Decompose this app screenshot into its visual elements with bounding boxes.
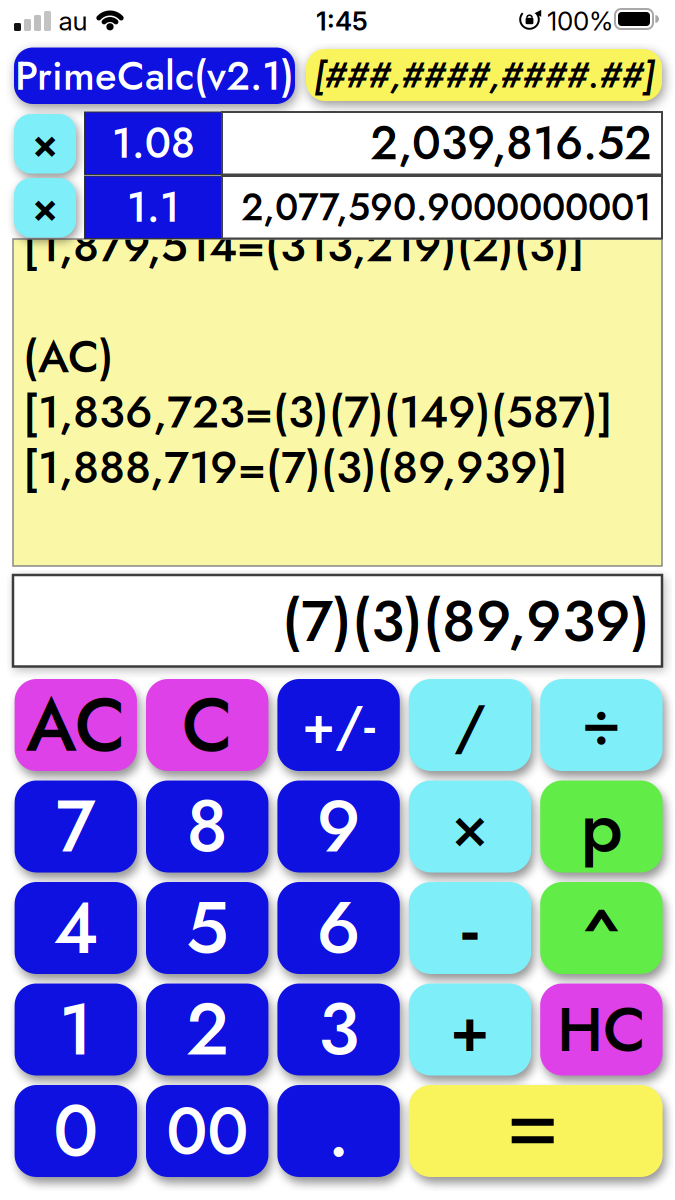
staticText: .: [328, 1079, 350, 1183]
button[interactable]: p: [540, 774, 663, 878]
staticText: /: [454, 683, 486, 767]
staticText: [###,####,####.##]: [313, 49, 654, 101]
staticText: PrimeCalc(v2.1): [15, 47, 294, 105]
button[interactable]: ^: [540, 867, 663, 989]
button[interactable]: ×: [409, 780, 531, 872]
staticText: (7)(3)(89,939): [282, 579, 650, 663]
staticText: 1: [59, 977, 93, 1081]
staticText: 3: [318, 977, 359, 1081]
button[interactable]: 3: [277, 977, 400, 1081]
staticText: 7: [56, 774, 96, 878]
button[interactable]: 1: [15, 977, 137, 1081]
button[interactable]: Equals: [409, 1085, 663, 1177]
button[interactable]: PrimeCalc(v2.1): [14, 47, 295, 105]
staticText: p: [580, 774, 622, 878]
staticText: AC: [26, 671, 126, 778]
button[interactable]: Multiply: [14, 114, 76, 173]
staticText: 8: [186, 774, 228, 878]
button[interactable]: /: [409, 679, 531, 771]
button[interactable]: ÷: [540, 679, 663, 771]
staticText: ×: [32, 184, 58, 232]
staticText: +: [450, 985, 490, 1074]
staticText: HC: [557, 985, 646, 1074]
button[interactable]: 7: [15, 774, 137, 878]
staticText: C: [182, 671, 233, 778]
staticText: (AC): [23, 324, 114, 389]
staticText: +/-: [302, 687, 375, 762]
button[interactable]: [###,####,####.##]: [306, 49, 662, 101]
staticText: 100%: [547, 5, 613, 37]
button[interactable]: 1.08: [84, 112, 222, 174]
staticText: au: [58, 5, 87, 37]
staticText: 1.1: [127, 177, 180, 238]
button[interactable]: 2: [146, 977, 268, 1081]
staticText: 00: [166, 1083, 248, 1179]
staticText: [1,879,514=(313,219)(2)(3)]: [23, 213, 585, 278]
button[interactable]: Multiply: [14, 178, 76, 237]
button[interactable]: +: [409, 983, 531, 1075]
button[interactable]: +/-: [277, 679, 400, 771]
button[interactable]: 4: [15, 876, 137, 980]
staticText: 1.08: [112, 113, 195, 174]
staticText: ×: [452, 783, 488, 870]
staticText: 0: [53, 1079, 98, 1183]
button[interactable]: 0: [15, 1079, 137, 1183]
button[interactable]: 1.1: [84, 176, 222, 238]
button[interactable]: AC: [15, 671, 137, 778]
staticText: 2,039,816.52: [370, 110, 652, 176]
button[interactable]: 00: [146, 1083, 268, 1179]
button[interactable]: 2,077,590.9000000001: [222, 176, 662, 238]
staticText: -: [462, 874, 478, 981]
button[interactable]: 8: [146, 774, 268, 878]
button[interactable]: 5: [146, 876, 268, 980]
button[interactable]: 9: [277, 774, 400, 878]
staticText: ^: [580, 880, 623, 1002]
button[interactable]: -: [409, 874, 531, 981]
button[interactable]: HC: [540, 983, 663, 1075]
button[interactable]: .: [277, 1079, 400, 1183]
button[interactable]: 6: [277, 876, 400, 980]
staticText: ×: [32, 120, 58, 168]
staticText: 5: [186, 876, 229, 980]
staticText: 2,077,590.9000000001: [241, 180, 652, 234]
staticText: [1,836,723=(3)(7)(149)(587)]: [23, 379, 613, 444]
button[interactable]: C: [146, 671, 268, 778]
staticText: [1,888,719=(7)(3)(89,939)]: [23, 435, 568, 500]
button[interactable]: 2,039,816.52: [222, 110, 662, 176]
staticText: 2: [186, 977, 229, 1081]
staticText: 9: [317, 774, 361, 878]
staticText: 1:45: [316, 5, 368, 37]
staticText: 4: [53, 876, 98, 980]
staticText: 6: [317, 876, 361, 980]
staticText: ÷: [582, 682, 620, 768]
